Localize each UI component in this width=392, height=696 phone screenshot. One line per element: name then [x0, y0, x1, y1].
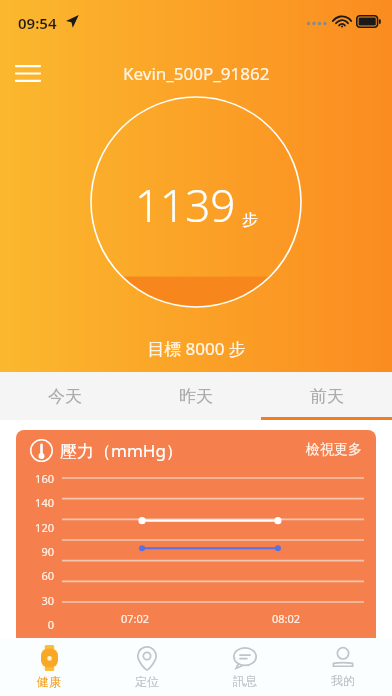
staticText: 09:54 [18, 13, 57, 33]
staticText: 60 [16, 568, 54, 583]
button[interactable]: 今天 [0, 372, 130, 420]
staticText: 08:02 [272, 611, 301, 626]
staticText: 昨天 [179, 386, 213, 407]
staticText: 0 [16, 617, 54, 632]
button[interactable]: 我的 [294, 638, 392, 696]
button[interactable]: 前天 [261, 372, 392, 420]
staticText: 壓力（mmHg） [60, 439, 183, 462]
staticText: Kevin_500P_91862 [123, 62, 270, 85]
button[interactable]: 昨天 [130, 372, 261, 420]
staticText: 定位 [135, 674, 159, 689]
staticText: 健康 [37, 674, 61, 689]
staticText: 160 [16, 471, 54, 486]
button[interactable]: 健康 [0, 638, 98, 696]
staticText: 我的 [331, 673, 355, 688]
staticText: 今天 [48, 386, 82, 407]
staticText: 140 [16, 495, 54, 510]
button[interactable]: 檢視更多 [304, 437, 364, 463]
staticText: 1139 [135, 175, 236, 235]
staticText: 90 [16, 544, 54, 559]
staticText: 120 [16, 520, 54, 535]
staticText: 訊息 [233, 673, 257, 688]
button[interactable]: 壓力（mmHg） [16, 430, 376, 638]
staticText: 目標 8000 步 [147, 337, 246, 360]
staticText: 前天 [310, 386, 344, 407]
button[interactable]: 定位 [98, 638, 196, 696]
staticText: 檢視更多 [306, 441, 362, 459]
button[interactable]: Menu [6, 51, 50, 95]
button[interactable]: 訊息 [196, 638, 294, 696]
staticText: 步 [242, 210, 258, 230]
staticText: 30 [16, 593, 54, 608]
staticText: 07:02 [121, 611, 150, 626]
